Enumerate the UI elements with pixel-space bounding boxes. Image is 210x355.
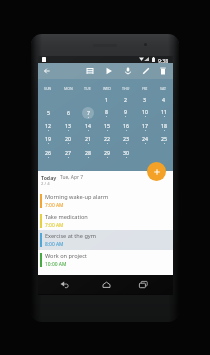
staticText: 20 [65,135,71,142]
button[interactable]: Work on project [38,250,173,270]
staticText: 11 [161,108,167,115]
staticText: 12 [45,122,51,129]
staticText: SUN [44,86,52,91]
staticText: 24 [142,135,148,142]
staticText: 26 [45,149,51,156]
staticText: 8:00 AM [45,241,64,248]
button[interactable]: Voice [122,65,134,77]
staticText: FRI [142,86,148,91]
staticText: 6 [67,109,70,116]
staticText: 1 [105,96,108,103]
staticText: 10 [142,108,148,115]
staticText: 7:00 AM [45,202,64,209]
button[interactable]: Home [99,277,113,291]
button[interactable]: Back [41,65,53,77]
staticText: 29 [104,149,110,156]
button[interactable]: Take medication [38,211,173,231]
button[interactable]: Recents [136,277,150,291]
staticText: 22 [104,135,110,142]
staticText: 14 [85,122,91,129]
staticText: 9 [124,108,127,115]
staticText: Tue, Apr 7 [60,174,84,181]
staticText: 28 [85,149,91,156]
button[interactable]: Exercise at the gym [38,230,173,250]
staticText: SAT [160,86,167,91]
staticText: Today [41,174,57,181]
button[interactable]: Agenda [84,65,96,77]
staticText: THU [122,86,130,91]
staticText: 2 [124,96,127,103]
staticText: 8 [105,108,108,115]
staticText: 18 [161,122,167,129]
button[interactable]: Add event [147,162,166,181]
staticText: TUE [84,86,91,91]
staticText: MON [64,86,73,91]
staticText: 4 [162,96,165,103]
staticText: 9:38 [158,57,169,64]
staticText: 10:00 AM [45,261,67,268]
staticText: 3 [143,96,146,103]
button[interactable]: Morning wake-up alarm [38,191,173,211]
button[interactable]: Delete [157,65,169,77]
staticText: 27 [65,149,71,156]
staticText: 25 [161,135,167,142]
staticText: Exercise at the gym [45,232,96,240]
staticText: 19 [45,135,51,142]
staticText: 7 [87,109,90,116]
button[interactable]: Back [57,277,71,291]
staticText: 23 [123,135,129,142]
staticText: 7:00 AM [45,222,64,229]
button[interactable]: Edit [140,65,152,77]
staticText: Work on project [45,252,87,260]
staticText: Morning wake-up alarm [45,193,109,201]
button[interactable]: Play [103,65,115,77]
staticText: 21 [85,135,91,142]
staticText: 30 [123,149,129,156]
staticText: 5 [47,109,50,116]
staticText: 16 [123,122,129,129]
staticText: 2 / 4 [41,181,50,187]
staticText: 17 [142,122,148,129]
staticText: 15 [104,122,110,129]
staticText: 13 [65,122,71,129]
staticText: WED [103,86,111,91]
staticText: Take medication [45,213,88,221]
